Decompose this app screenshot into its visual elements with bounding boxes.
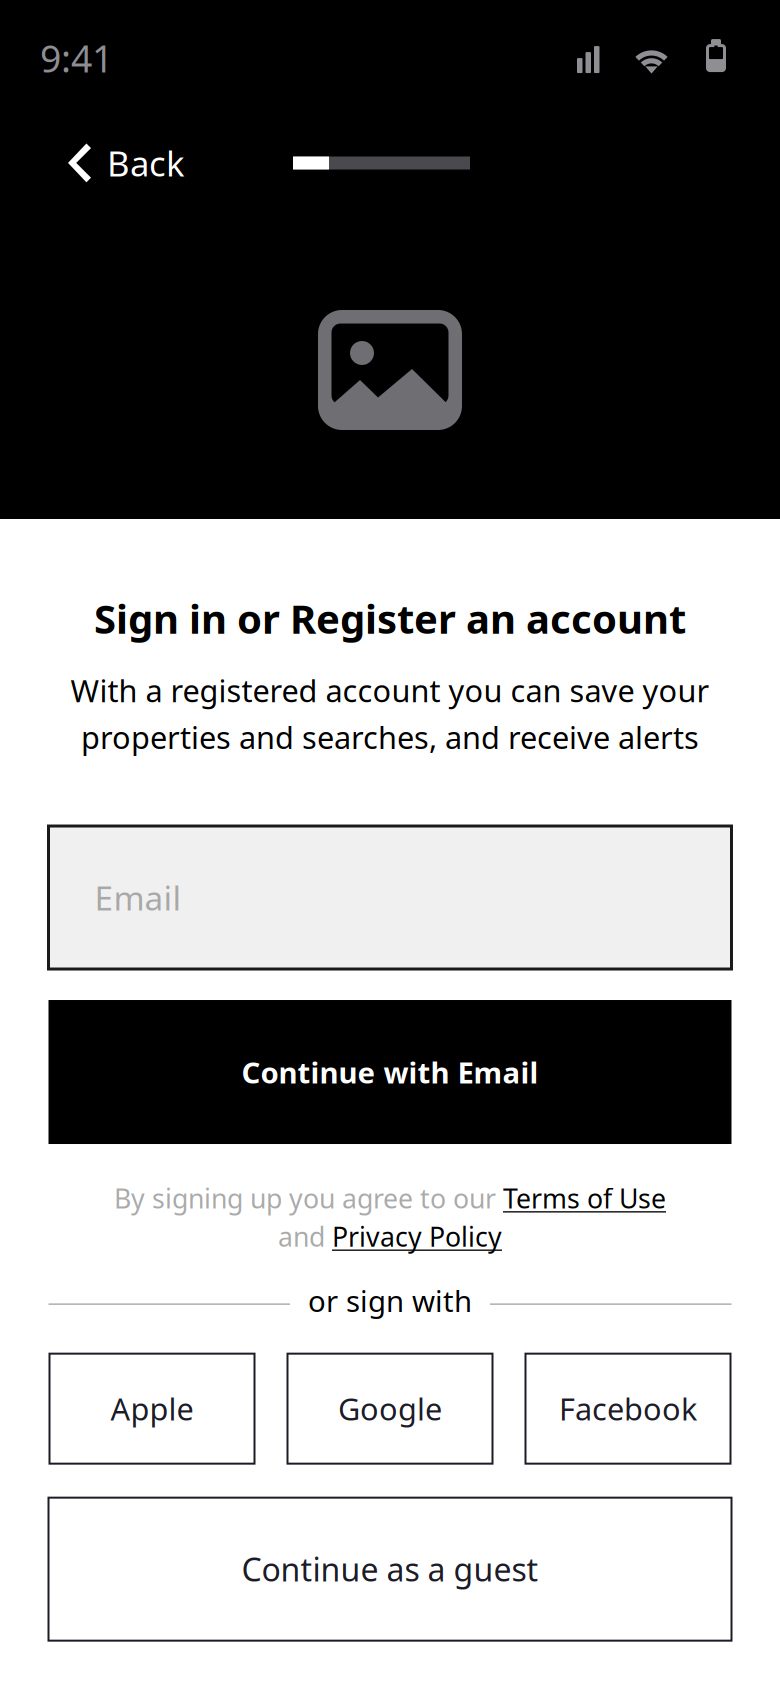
staticText: or sign with xyxy=(308,1281,472,1321)
button[interactable]: Email xyxy=(48,826,731,969)
staticText: 9:41 xyxy=(40,33,113,83)
button[interactable]: Privacy Policy xyxy=(332,1218,502,1255)
staticText: properties and searches, and receive ale… xyxy=(81,716,699,758)
button[interactable]: Apple xyxy=(49,1354,254,1464)
staticText: and xyxy=(278,1218,332,1255)
staticText: With a registered account you can save y… xyxy=(70,669,709,711)
staticText: Apple xyxy=(110,1388,193,1430)
staticText: Back xyxy=(107,139,185,187)
staticText: Continue as a guest xyxy=(241,1547,538,1591)
staticText: Google xyxy=(338,1388,442,1430)
staticText: Privacy Policy xyxy=(332,1218,502,1255)
staticText: Continue with Email xyxy=(241,1052,538,1092)
staticText: Sign in or Register an account xyxy=(94,591,686,645)
button[interactable]: Back xyxy=(0,129,207,197)
button[interactable]: Facebook xyxy=(525,1354,730,1464)
staticText: Terms of Use xyxy=(503,1180,666,1216)
button[interactable]: Terms of Use xyxy=(503,1180,666,1216)
staticText: Email xyxy=(94,875,181,920)
button[interactable]: Google xyxy=(287,1354,492,1464)
staticText: By signing up you agree to our xyxy=(114,1180,503,1216)
button[interactable]: Continue as a guest xyxy=(48,1498,731,1641)
staticText: Facebook xyxy=(559,1388,697,1430)
button[interactable]: Continue with Email xyxy=(48,1000,731,1144)
